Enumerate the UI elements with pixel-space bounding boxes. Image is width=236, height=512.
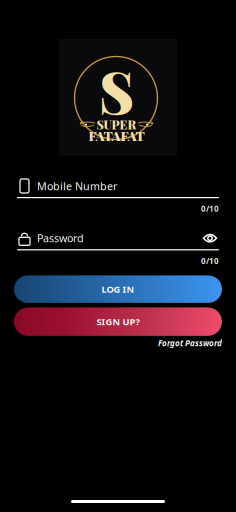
staticText: S <box>99 52 134 129</box>
staticText: 0/10 <box>201 256 219 266</box>
button[interactable]: SIGN UP? <box>14 307 222 336</box>
staticText: LOG IN <box>101 283 134 295</box>
staticText: FATAFAT <box>88 127 144 144</box>
button[interactable]: LOG IN <box>14 275 222 303</box>
staticText: Mobile Number <box>37 179 117 193</box>
button[interactable]: Show password <box>203 233 217 243</box>
button[interactable]: Forgot Password <box>158 338 222 348</box>
staticText: 0/10 <box>201 203 219 214</box>
staticText: SIGN UP? <box>96 315 139 328</box>
staticText: Forgot Password <box>158 338 222 348</box>
staticText: SUPER <box>96 116 136 132</box>
staticText: Password <box>37 231 84 245</box>
